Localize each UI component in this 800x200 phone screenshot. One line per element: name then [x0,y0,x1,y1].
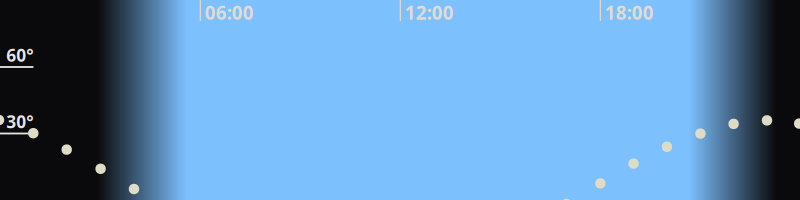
staticText: 60° [6,43,33,66]
staticText: 30° [6,110,33,133]
staticText: 12:00 [405,0,454,25]
staticText: 18:00 [605,0,654,25]
staticText: 06:00 [205,0,254,25]
button[interactable]: Hourly temperature forecast [0,0,800,200]
